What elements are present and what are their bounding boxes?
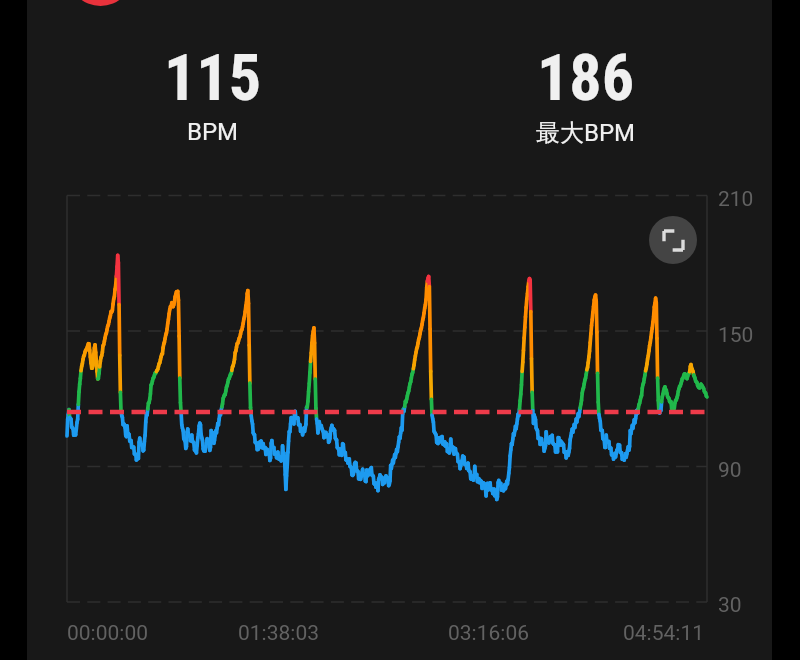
staticText: 00:00:00: [67, 621, 148, 646]
staticText: 04:54:11: [623, 621, 704, 646]
staticText: 最大BPM: [536, 118, 636, 148]
staticText: 03:16:06: [448, 621, 529, 646]
staticText: 150: [718, 323, 754, 348]
staticText: 186: [537, 41, 635, 116]
button[interactable]: Fullscreen: [649, 216, 697, 264]
staticText: 210: [718, 187, 754, 212]
staticText: 115: [164, 41, 262, 116]
staticText: BPM: [187, 118, 239, 146]
staticText: 30: [718, 593, 742, 618]
staticText: 01:38:03: [238, 621, 319, 646]
staticText: 90: [718, 458, 742, 483]
